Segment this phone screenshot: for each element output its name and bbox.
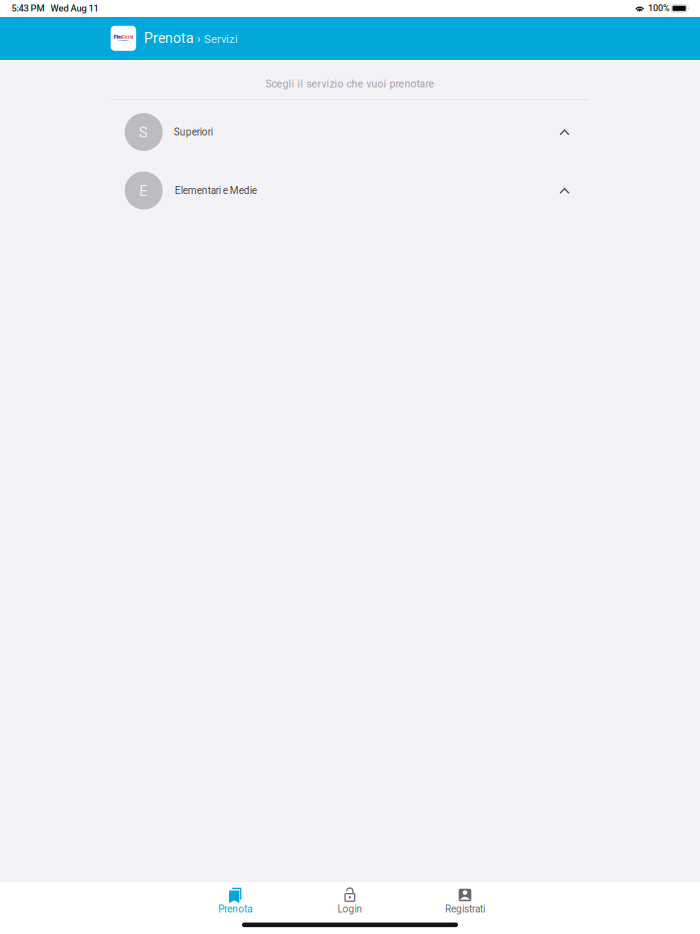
staticText: Wed Aug 11 [50,3,98,14]
staticText: Prenota [144,30,194,46]
button[interactable]: Prenota [206,882,264,918]
staticText: 5:43 PM [11,3,44,14]
staticText: › [194,32,201,46]
staticText: Prenota [218,903,252,915]
staticText: Superiori [174,126,213,138]
staticText: 100% [648,3,670,13]
staticText: Registrati [445,903,485,915]
staticText: Pim [114,34,122,40]
staticText: Elementari e Medie [175,185,257,196]
staticText: S [139,124,148,141]
button[interactable]: Registrati [436,882,494,918]
staticText: Login [337,903,362,915]
staticText: Servizi [201,33,238,46]
staticText: Corsi [122,34,133,40]
button[interactable]: S [111,103,589,161]
button[interactable]: E [111,161,589,219]
staticText: Scegli il servizio che vuoi prenotare [265,78,434,90]
staticText: E [139,182,147,199]
button[interactable]: Login [321,882,379,918]
staticText: scuola di italiano [118,39,129,41]
